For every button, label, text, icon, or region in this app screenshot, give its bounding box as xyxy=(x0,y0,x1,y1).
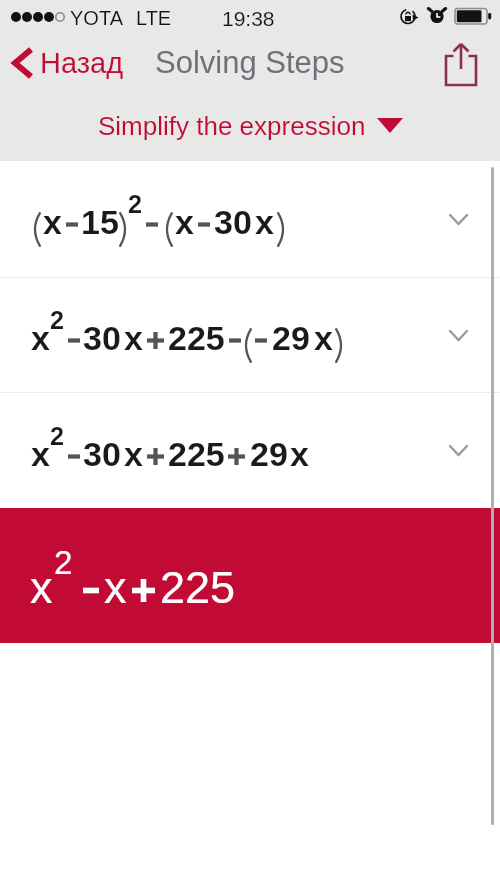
staticText: 30 xyxy=(214,203,252,241)
staticText: x xyxy=(175,203,194,241)
staticText: 19:38 xyxy=(222,7,275,30)
staticText: x xyxy=(255,203,274,241)
staticText: 30 xyxy=(83,319,121,357)
button[interactable]: Назад xyxy=(0,42,134,84)
staticText: x xyxy=(290,435,309,473)
staticText: x xyxy=(43,203,62,241)
button[interactable]: Share xyxy=(443,39,479,87)
staticText: x xyxy=(31,435,50,473)
staticText: 2 xyxy=(50,422,64,450)
staticText: YOTA xyxy=(70,7,123,29)
staticText: 30 xyxy=(83,435,121,473)
staticText: LTE xyxy=(136,7,172,29)
staticText: Solving Steps xyxy=(155,45,345,80)
staticText: Назад xyxy=(40,47,124,79)
button[interactable]: Simplify the expression xyxy=(90,107,411,144)
staticText: x xyxy=(314,319,333,357)
staticText: 225 xyxy=(168,319,225,357)
button[interactable]: x xyxy=(0,393,500,508)
staticText: 2 xyxy=(50,306,64,334)
staticText: 2 xyxy=(54,544,73,581)
staticText: x xyxy=(124,435,143,473)
staticText: x xyxy=(30,562,53,612)
staticText: 29 xyxy=(272,319,310,357)
button[interactable]: x xyxy=(0,508,500,643)
button[interactable]: x xyxy=(0,161,500,277)
staticText: 225 xyxy=(168,435,225,473)
staticText: 225 xyxy=(160,562,236,612)
staticText: x xyxy=(104,562,127,612)
staticText: Simplify the expression xyxy=(98,111,366,140)
button[interactable]: x xyxy=(0,278,500,392)
staticText: 15 xyxy=(81,203,119,241)
staticText: x xyxy=(124,319,143,357)
staticText: 29 xyxy=(250,435,288,473)
staticText: 2 xyxy=(128,190,142,218)
staticText: x xyxy=(31,319,50,357)
